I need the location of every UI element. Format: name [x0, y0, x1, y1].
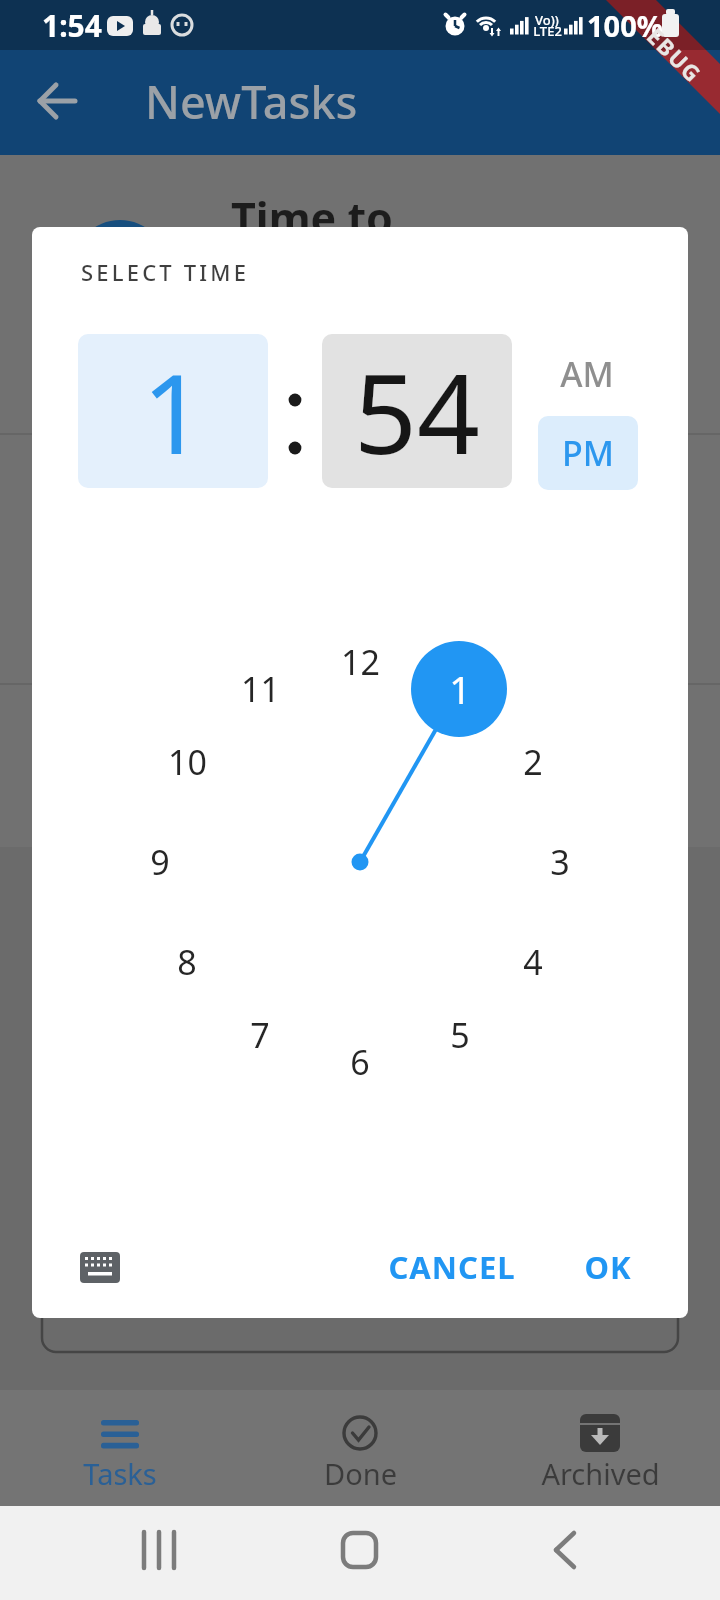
staticText: SELECT TIME	[81, 257, 250, 287]
staticText: 10	[168, 739, 207, 785]
staticText: Time to	[231, 188, 393, 247]
staticText: Done	[324, 1454, 397, 1493]
staticText: Tasks	[83, 1454, 157, 1493]
staticText: 11	[241, 666, 280, 712]
staticText: CANCEL	[388, 1246, 516, 1288]
staticText: 1	[142, 336, 205, 486]
staticText: PM	[562, 430, 614, 476]
staticText: OK	[584, 1246, 632, 1288]
staticText: 100%	[587, 6, 663, 45]
staticText: 1:54	[42, 5, 102, 46]
staticText: 3	[550, 839, 570, 885]
staticText: 4	[523, 939, 543, 985]
staticText: 9	[150, 839, 170, 885]
staticText: 1	[449, 663, 471, 715]
staticText: NewTasks	[145, 71, 358, 132]
staticText: AM	[560, 351, 614, 397]
staticText: LTE2	[533, 22, 562, 40]
staticText: 2	[523, 739, 543, 785]
staticText: 5	[450, 1012, 470, 1058]
staticText: 6	[350, 1039, 370, 1085]
staticText: 8	[177, 939, 197, 985]
staticText: Vo))	[535, 11, 559, 29]
staticText: 7	[250, 1012, 270, 1058]
staticText: 12	[341, 639, 380, 685]
staticText: Archived	[541, 1454, 660, 1493]
staticText: EBUG	[641, 21, 709, 89]
staticText: 54	[354, 336, 480, 486]
